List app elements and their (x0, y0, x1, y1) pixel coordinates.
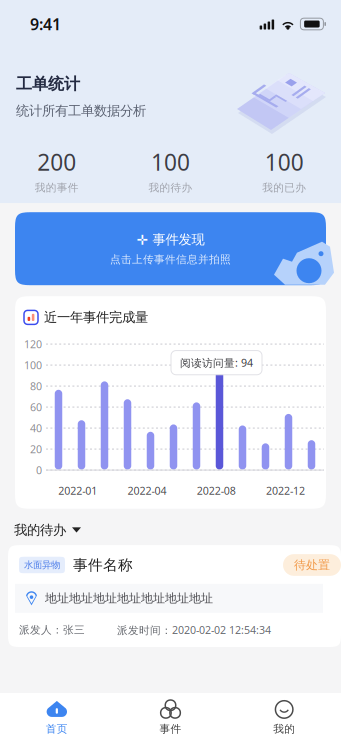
staticText: 2022-12 (266, 484, 305, 498)
staticText: 待处置 (294, 558, 330, 572)
staticText: 我的已办 (262, 181, 306, 194)
staticText: 60 (30, 400, 42, 414)
staticText: 首页 (46, 722, 68, 735)
staticText: 我的 (273, 722, 295, 735)
staticText: 2022-08 (197, 484, 236, 498)
staticText: 100 (24, 358, 42, 372)
staticText: 派发时间：2020-02-02 12:54:34 (117, 623, 271, 637)
staticText: 2022-01 (58, 484, 97, 498)
staticText: 我的待办 (14, 522, 66, 538)
button[interactable]: 首页 (0, 693, 114, 744)
staticText: 水面异物 (24, 559, 60, 571)
staticText: 100 (265, 147, 304, 177)
staticText: 20 (30, 442, 42, 456)
staticText: 阅读访问量: 94 (180, 356, 253, 370)
staticText: 地址地址地址地址地址地址地址 (45, 591, 213, 606)
staticText: 我的待办 (148, 181, 192, 194)
staticText: 我的事件 (35, 181, 79, 194)
staticText: 事件 (159, 722, 181, 735)
staticText: ✛ 事件发现 (136, 231, 204, 248)
staticText: 9:41 (30, 13, 61, 35)
button[interactable]: ✛ 事件发现 (15, 212, 326, 285)
staticText: 0 (36, 463, 42, 477)
staticText: 100 (151, 147, 190, 177)
button[interactable]: 事件 (114, 693, 227, 744)
staticText: 2022-04 (127, 484, 166, 498)
staticText: 近一年事件完成量 (44, 309, 148, 326)
staticText: 派发人：张三 (19, 623, 85, 636)
staticText: 工单统计 (16, 74, 80, 94)
button[interactable]: 我的 (227, 693, 341, 744)
staticText: 200 (37, 147, 76, 177)
staticText: 40 (30, 421, 42, 435)
staticText: 点击上传事件信息并拍照 (110, 253, 231, 266)
staticText: 80 (30, 379, 42, 393)
staticText: 统计所有工单数据分析 (16, 103, 146, 119)
staticText: 120 (24, 337, 42, 351)
staticText: 事件名称 (73, 556, 133, 574)
